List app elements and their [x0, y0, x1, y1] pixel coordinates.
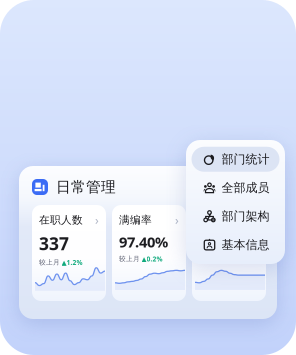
staticText: 较上月 — [39, 258, 60, 266]
staticText: 在职人数 — [39, 213, 83, 226]
button[interactable]: 流动率 — [192, 205, 266, 301]
staticText: ▲0.2% — [141, 254, 162, 263]
staticText: 97.40% — [119, 232, 168, 251]
staticText: › — [255, 212, 259, 228]
staticText: 3.10% — [199, 232, 240, 251]
staticText: 部门统计 — [221, 152, 269, 167]
button[interactable]: 部门架构 — [191, 204, 279, 229]
staticText: 满编率 — [119, 213, 152, 226]
staticText: › — [95, 212, 99, 228]
staticText: 部门架构 — [221, 209, 269, 224]
button[interactable]: 在职人数 — [32, 205, 106, 301]
staticText: 日常管理 — [56, 178, 116, 196]
staticText: ▲1.2% — [61, 258, 82, 267]
button[interactable]: 全部成员 — [191, 175, 279, 200]
staticText: › — [175, 212, 179, 228]
button[interactable]: 基本信息 — [191, 232, 279, 257]
staticText: 全部成员 — [221, 180, 269, 195]
staticText: 流动率 — [199, 213, 232, 226]
staticText: 较上月 — [119, 255, 140, 263]
button[interactable]: 满编率 — [112, 205, 186, 301]
staticText: 基本信息 — [221, 237, 269, 252]
button[interactable]: 部门统计 — [191, 147, 279, 172]
staticText: 337 — [39, 232, 69, 255]
